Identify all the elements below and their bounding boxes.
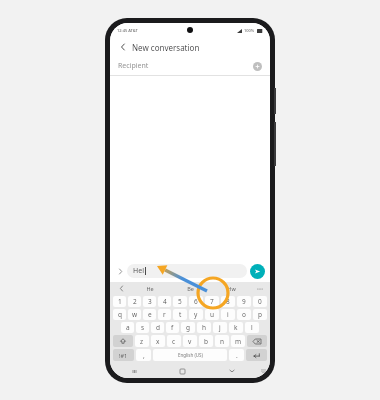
button[interactable]: Enter [246,349,267,361]
staticText: 2 [133,297,137,306]
button[interactable]: Recipient [110,57,270,75]
button[interactable]: i [221,309,235,320]
button[interactable]: Expand options [115,266,125,276]
staticText: q [118,310,122,319]
button[interactable]: q [113,309,126,320]
button[interactable]: He [130,282,170,295]
button[interactable]: w [128,309,141,320]
button[interactable]: Recents [110,364,158,378]
button[interactable]: x [151,335,165,347]
staticText: 12:45 AT&T [117,28,138,33]
button[interactable]: 8 [221,296,235,307]
staticText: e [148,310,152,319]
staticText: 0 [258,297,262,306]
staticText: h [202,323,207,332]
staticText: z [140,337,144,346]
staticText: 4 [163,297,167,306]
button[interactable]: u [205,309,219,320]
staticText: Recipient [118,61,253,71]
button[interactable]: 1 [113,296,126,307]
staticText: New conversation [132,42,200,53]
button[interactable]: More options [252,282,268,295]
button[interactable]: 0 [253,296,267,307]
button[interactable]: Hide keyboard [207,364,256,378]
staticText: d [156,323,160,332]
staticText: . [236,351,238,360]
button[interactable]: k [229,322,243,333]
staticText: 9 [242,297,246,306]
button[interactable]: p [253,309,267,320]
button[interactable]: s [136,322,149,333]
button[interactable]: 3 [143,296,156,307]
staticText: s [141,323,145,332]
button[interactable]: . [229,349,244,361]
button[interactable]: r [158,309,171,320]
staticText: a [126,323,130,332]
button[interactable]: t [173,309,187,320]
button[interactable]: l [245,322,259,333]
button[interactable]: z [135,335,149,347]
staticText: l [251,323,253,332]
staticText: m [235,337,242,346]
button[interactable]: b [199,335,213,347]
staticText: 7 [210,297,214,306]
button[interactable]: Home [158,364,207,378]
staticText: j [219,323,221,332]
staticText: r [163,310,166,319]
button[interactable]: Symbols [113,349,134,361]
button[interactable]: Shift [113,335,133,347]
staticText: n [220,337,225,346]
button[interactable]: Previous suggestions [112,282,130,295]
button[interactable]: English (US) [153,349,227,361]
button[interactable]: y [189,309,203,320]
staticText: c [172,337,176,346]
button[interactable]: 5 [173,296,187,307]
staticText: !#1 [119,352,128,359]
button[interactable]: e [143,309,156,320]
button[interactable]: Back [117,41,129,53]
button[interactable]: o [237,309,251,320]
button[interactable]: n [215,335,229,347]
staticText: 1 [118,297,122,306]
button[interactable]: Keyboard layout [256,364,270,378]
staticText: u [210,310,215,319]
staticText: k [234,323,238,332]
button[interactable]: h [197,322,211,333]
staticText: y [194,310,198,319]
staticText: w [132,310,138,319]
button[interactable]: Backspace [247,335,267,347]
staticText: , [143,351,145,360]
staticText: g [186,323,190,332]
staticText: v [188,337,192,346]
staticText: 100% [244,28,255,33]
button[interactable]: , [136,349,151,361]
button[interactable]: g [181,322,195,333]
button[interactable]: a [121,322,134,333]
staticText: 3 [148,297,152,306]
button[interactable]: Add recipient [253,62,262,71]
button[interactable]: 2 [128,296,141,307]
staticText: t [179,310,182,319]
staticText: 6 [194,297,198,306]
button[interactable]: j [213,322,227,333]
staticText: o [242,310,246,319]
staticText: Hel [133,266,144,276]
button[interactable]: 6 [189,296,203,307]
button[interactable]: 7 [205,296,219,307]
staticText: Hw [227,285,236,292]
button[interactable]: Hel [127,264,247,278]
button[interactable]: 9 [237,296,251,307]
staticText: i [227,310,229,319]
button[interactable]: m [231,335,245,347]
button[interactable]: 4 [158,296,171,307]
button[interactable]: c [167,335,181,347]
button[interactable]: Be [170,282,211,295]
button[interactable]: d [151,322,164,333]
staticText: f [171,323,174,332]
button[interactable]: f [166,322,179,333]
staticText: b [204,337,208,346]
button[interactable]: v [183,335,197,347]
staticText: p [258,310,262,319]
button[interactable]: Hw [211,282,252,295]
button[interactable]: Send [250,264,265,279]
